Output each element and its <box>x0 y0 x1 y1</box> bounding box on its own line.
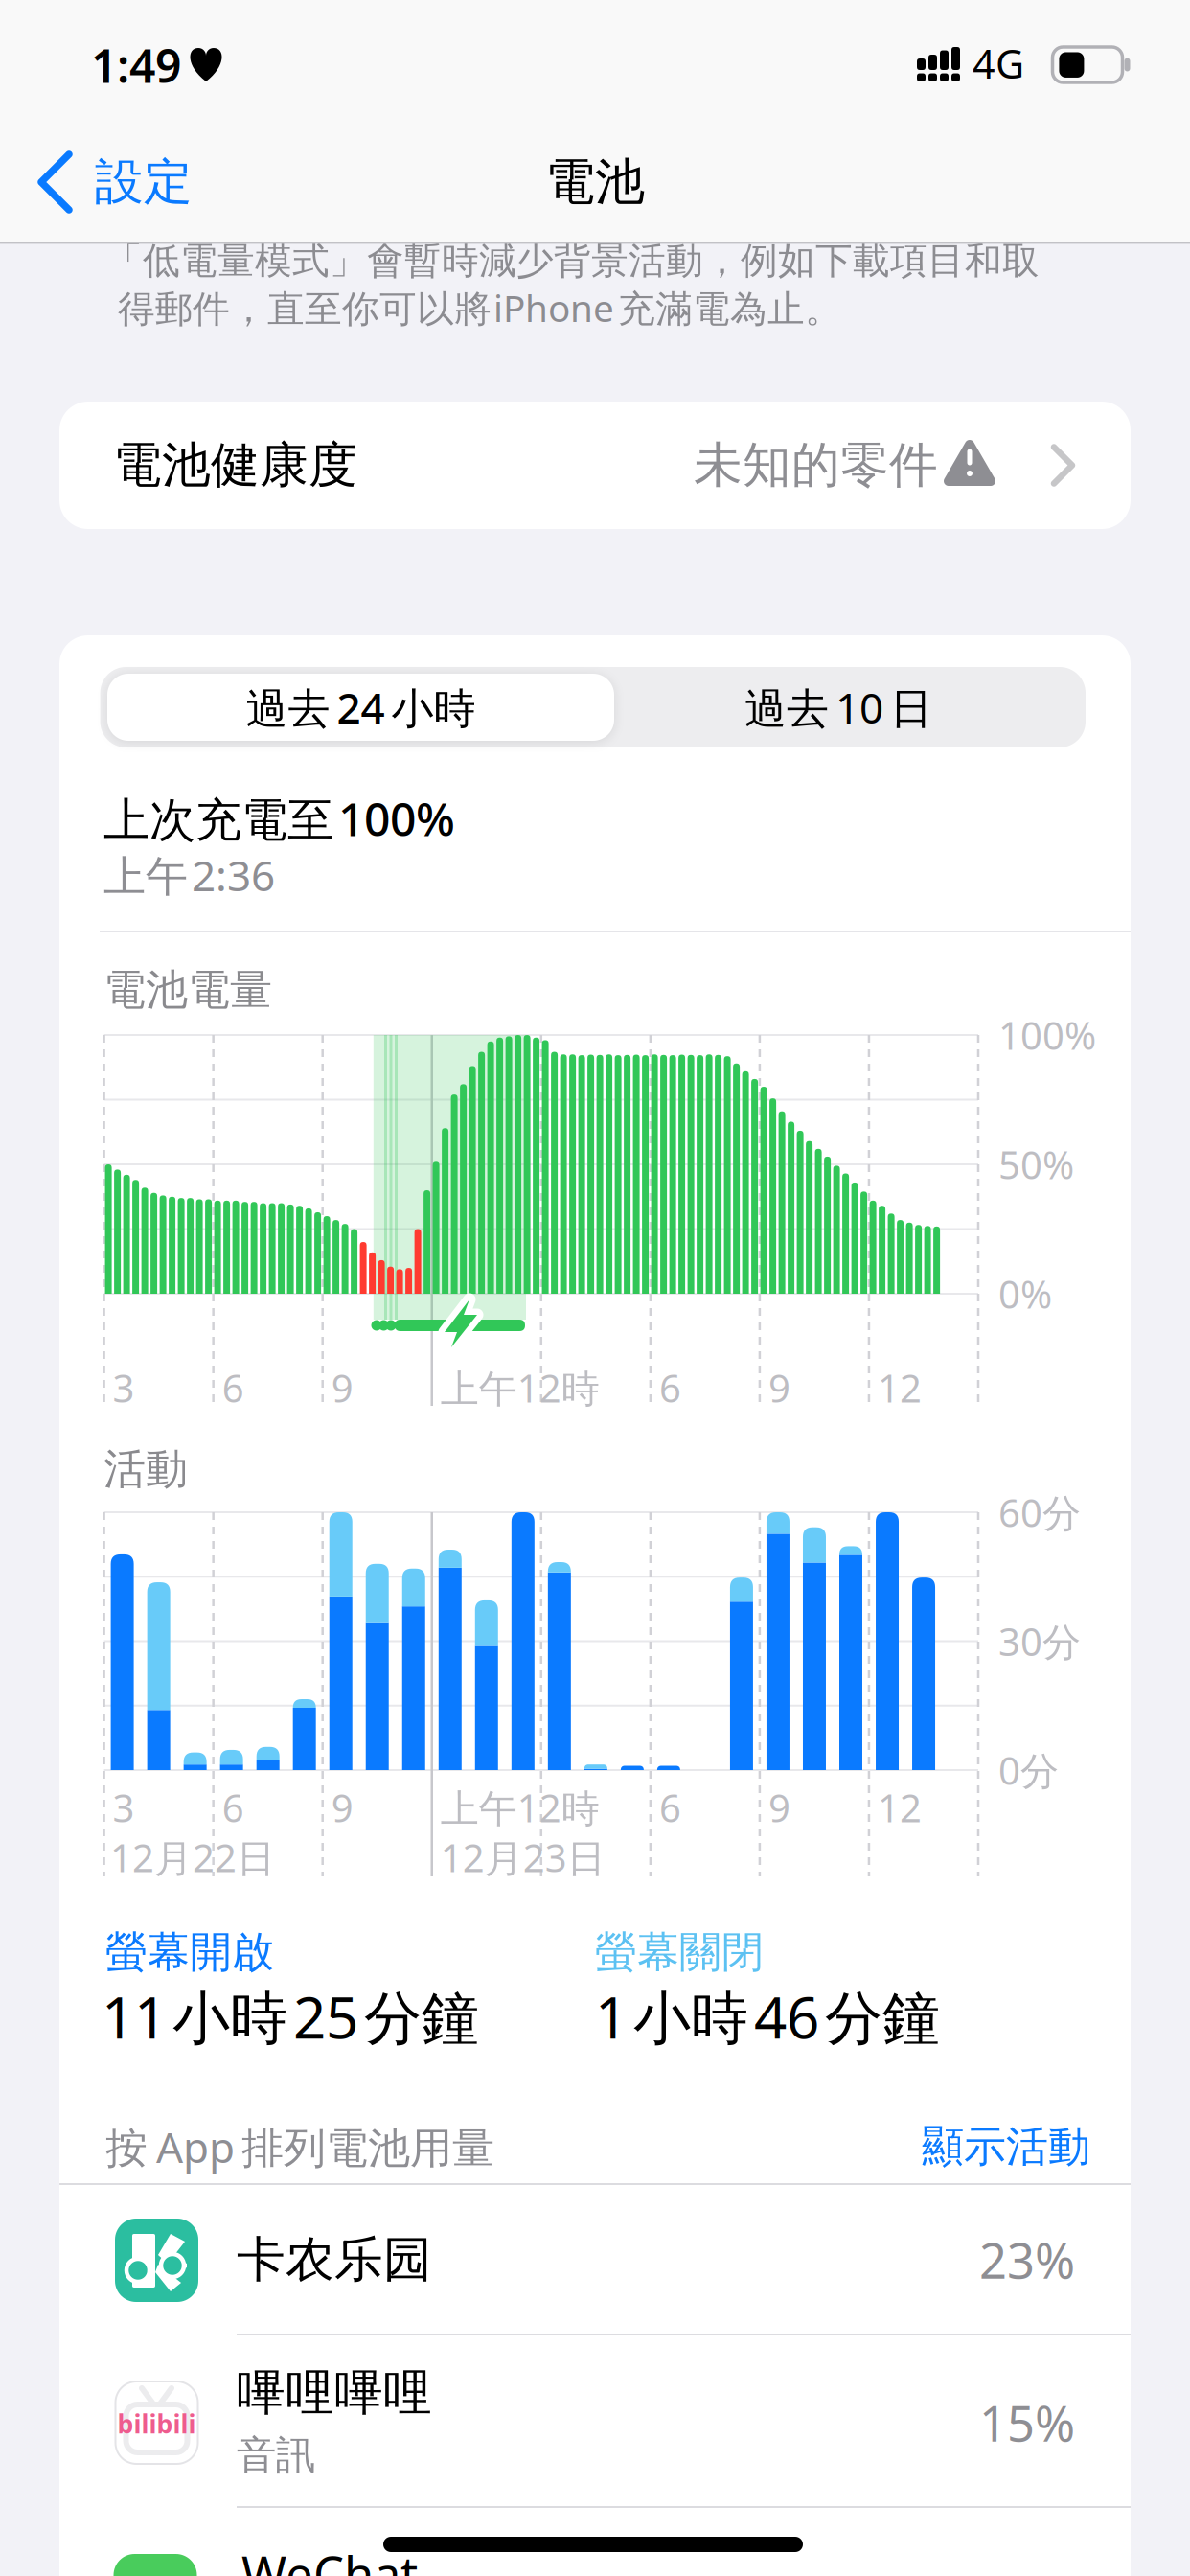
staticText: 3 <box>113 1362 135 1413</box>
staticText: 螢幕關閉 <box>595 1926 764 1978</box>
staticText: 上次充電至 100% <box>103 788 455 849</box>
staticText: 4G <box>973 37 1024 90</box>
staticText: 12 <box>878 1782 922 1833</box>
staticText: 電池健康度 <box>113 435 357 495</box>
staticText: 1 小時 46 分鐘 <box>595 1978 940 2055</box>
staticText: 得郵件，直至你可以將 iPhone 充滿電為止。 <box>118 283 842 332</box>
staticText: 12月23日 <box>441 1832 605 1883</box>
staticText: 30分 <box>998 1616 1081 1667</box>
staticText: 6 <box>659 1362 681 1413</box>
staticText: 上午 2:36 <box>103 847 275 903</box>
staticText: 60分 <box>998 1487 1081 1538</box>
staticText: bilibili <box>117 2407 196 2441</box>
staticText: 電池 <box>545 152 645 213</box>
staticText: 1:49 <box>91 35 181 96</box>
button[interactable]: 過去 24 小時 <box>107 674 614 741</box>
staticText: 音訊 <box>237 2431 315 2480</box>
staticText: 活動 <box>103 1443 188 1495</box>
button[interactable]: 過去 10 日 <box>608 669 1068 746</box>
staticText: 上午12時 <box>441 1782 600 1833</box>
staticText: 3 <box>113 1782 135 1833</box>
staticText: 12月22日 <box>110 1832 275 1883</box>
staticText: 6 <box>222 1362 244 1413</box>
staticText: 9 <box>768 1362 790 1413</box>
staticText: 上午12時 <box>441 1362 600 1413</box>
staticText: 螢幕開啟 <box>105 1926 274 1978</box>
staticText: 過去 24 小時 <box>246 679 476 735</box>
staticText: 嗶哩嗶哩 <box>237 2363 432 2423</box>
button[interactable]: bilibili <box>59 2334 1131 2507</box>
staticText: 顯示活動 <box>922 2121 1090 2173</box>
button[interactable]: 設定 <box>34 148 236 217</box>
staticText: 「低電量模式」會暫時減少背景活動，例如下載項目和取 <box>105 238 1040 283</box>
button[interactable]: 顯示活動 <box>803 2112 1090 2181</box>
staticText: 卡农乐园 <box>237 2230 432 2290</box>
button[interactable]: WeChat <box>59 2507 1131 2576</box>
staticText: 過去 10 日 <box>744 679 932 735</box>
button[interactable]: 電池健康度 <box>59 402 1131 529</box>
staticText: 6 <box>659 1782 681 1833</box>
staticText: 23% <box>979 2228 1075 2292</box>
staticText: 9 <box>768 1782 790 1833</box>
staticText: 9 <box>331 1362 353 1413</box>
staticText: 未知的零件 <box>694 435 938 495</box>
staticText: 100% <box>998 1010 1096 1060</box>
button[interactable]: 卡农乐园 <box>59 2184 1131 2334</box>
staticText: WeChat <box>241 2541 418 2576</box>
staticText: 9 <box>331 1782 353 1833</box>
staticText: 50% <box>998 1139 1074 1190</box>
staticText: 12 <box>878 1362 922 1413</box>
staticText: 15% <box>979 2390 1075 2455</box>
staticText: 按 App 排列電池用量 <box>105 2119 494 2175</box>
staticText: 6 <box>222 1782 244 1833</box>
staticText: 設定 <box>95 152 193 212</box>
staticText: 0% <box>998 1268 1052 1319</box>
staticText: 11 小時 25 分鐘 <box>102 1978 479 2055</box>
staticText: 電池電量 <box>103 964 272 1016</box>
staticText: 0分 <box>998 1745 1059 1795</box>
